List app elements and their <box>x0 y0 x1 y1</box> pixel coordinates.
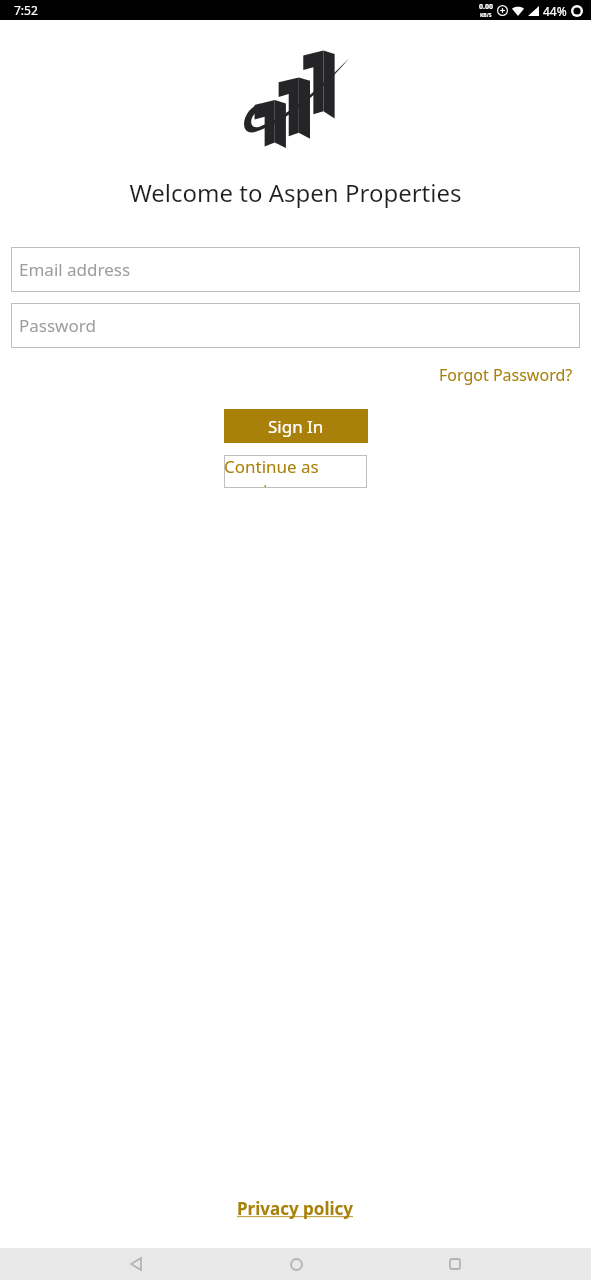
button[interactable]: Home <box>272 1248 320 1280</box>
staticText: Privacy policy <box>237 1197 354 1220</box>
staticText: Continue as guest <box>224 455 367 488</box>
staticText: 7:52 <box>14 2 38 18</box>
staticText: 0.00 <box>479 2 493 12</box>
button[interactable]: Password <box>11 303 580 348</box>
staticText: Forgot Password? <box>439 364 573 386</box>
button[interactable]: Sign In <box>224 409 368 443</box>
button[interactable]: Continue as guest <box>224 455 367 488</box>
button[interactable]: Privacy policy <box>229 1193 362 1224</box>
staticText: Password <box>19 314 96 337</box>
button[interactable]: Recents <box>431 1248 479 1280</box>
staticText: Email address <box>19 258 131 281</box>
staticText: 44% <box>543 3 567 19</box>
staticText: Sign In <box>268 415 324 438</box>
staticText: Welcome to Aspen Properties <box>129 176 462 209</box>
button[interactable]: Email address <box>11 247 580 292</box>
button[interactable]: Back <box>112 1248 160 1280</box>
staticText: KB/S <box>480 12 492 19</box>
button[interactable]: Forgot Password? <box>433 360 579 390</box>
